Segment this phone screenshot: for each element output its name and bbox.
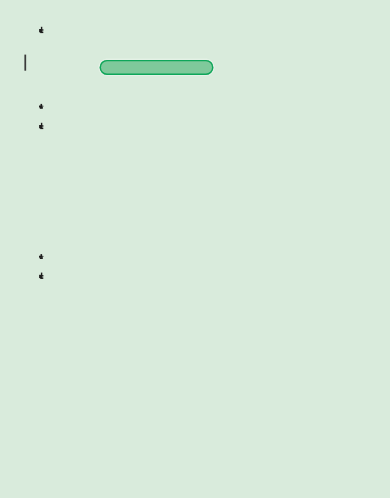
button[interactable]: List item 2 [34,118,374,136]
button[interactable]: Overflow menu [33,22,51,38]
button[interactable]: List item 4 [34,268,374,286]
button[interactable]: List item 3 [34,249,374,267]
button[interactable]: Text field [18,50,90,76]
button[interactable]: Primary action chip [98,58,215,77]
button[interactable]: List item 1 [34,99,374,117]
